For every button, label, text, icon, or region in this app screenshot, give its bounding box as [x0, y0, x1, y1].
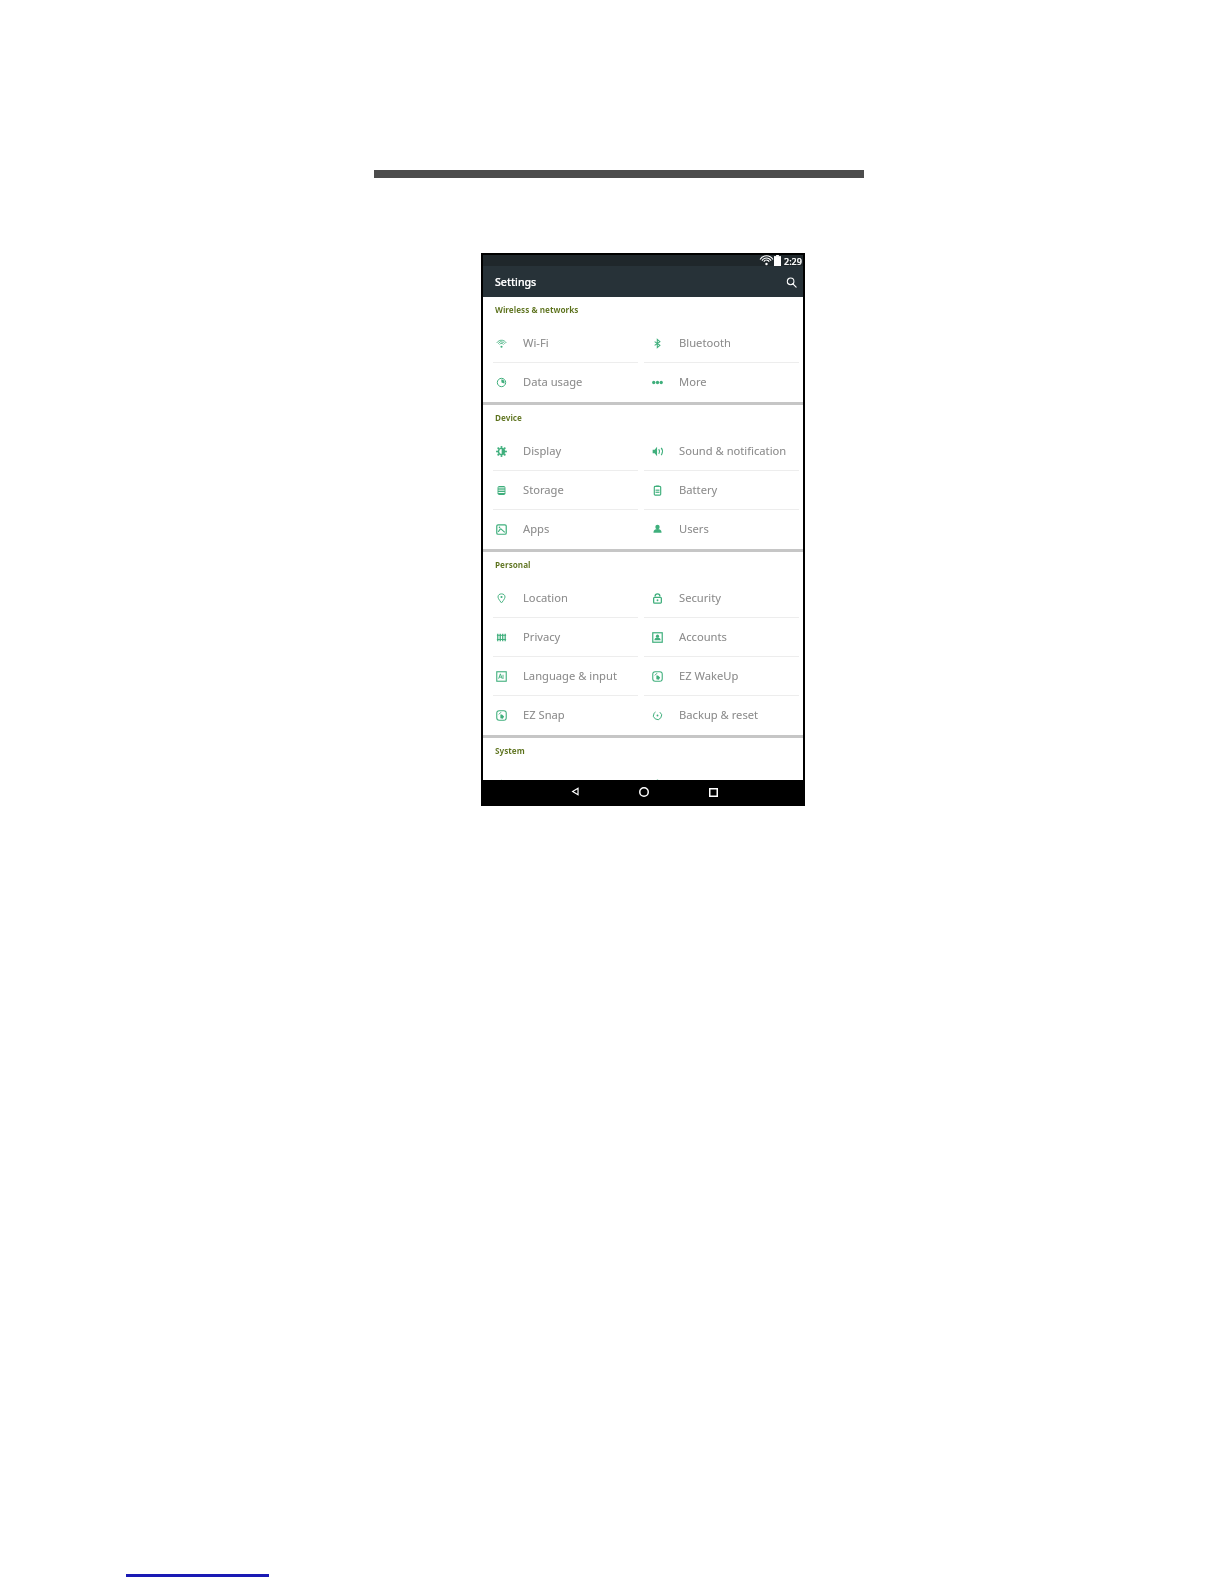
staticText: System: [495, 745, 525, 756]
staticText: Battery: [679, 482, 718, 497]
staticText: Sound & notification: [679, 443, 787, 458]
staticText: Storage: [523, 482, 564, 497]
button[interactable]: Home: [632, 780, 656, 804]
button[interactable]: Apps: [483, 510, 639, 549]
staticText: More: [679, 374, 707, 389]
button[interactable]: Location: [483, 579, 639, 618]
button[interactable]: Recents: [701, 780, 725, 804]
staticText: Backup & reset: [679, 707, 759, 722]
button[interactable]: Privacy: [483, 618, 639, 657]
staticText: Device: [495, 412, 522, 423]
staticText: Settings: [495, 275, 537, 289]
button[interactable]: EZ WakeUp: [639, 657, 803, 696]
staticText: Security: [679, 590, 721, 605]
staticText: Wireless & networks: [495, 304, 579, 315]
staticText: EZ Snap: [523, 707, 565, 722]
button[interactable]: Security: [639, 579, 803, 618]
staticText: Wi-Fi: [523, 335, 549, 350]
staticText: 2:29: [784, 255, 802, 266]
button[interactable]: Battery: [639, 471, 803, 510]
button[interactable]: Backup & reset: [639, 696, 803, 735]
button[interactable]: Accounts: [639, 618, 803, 657]
button[interactable]: Back: [563, 780, 587, 804]
button[interactable]: EZ Snap: [483, 696, 639, 735]
button[interactable]: Data usage: [483, 363, 639, 402]
button[interactable]: Bluetooth: [639, 324, 803, 363]
button[interactable]: Users: [639, 510, 803, 549]
staticText: Display: [523, 443, 562, 458]
staticText: Accounts: [679, 629, 727, 644]
staticText: EZ WakeUp: [679, 668, 739, 683]
staticText: Personal: [495, 559, 531, 570]
button[interactable]: More: [639, 363, 803, 402]
button[interactable]: Sound & notification: [639, 432, 803, 471]
staticText: Location: [523, 590, 568, 605]
staticText: Bluetooth: [679, 335, 731, 350]
button[interactable]: Wi-Fi: [483, 324, 639, 363]
button[interactable]: Search: [780, 271, 802, 293]
button[interactable]: Storage: [483, 471, 639, 510]
staticText: Apps: [523, 521, 550, 536]
staticText: Privacy: [523, 629, 561, 644]
staticText: Data usage: [523, 374, 583, 389]
staticText: Language & input: [523, 668, 617, 683]
button[interactable]: Language & input: [483, 657, 639, 696]
staticText: Users: [679, 521, 709, 536]
button[interactable]: Display: [483, 432, 639, 471]
